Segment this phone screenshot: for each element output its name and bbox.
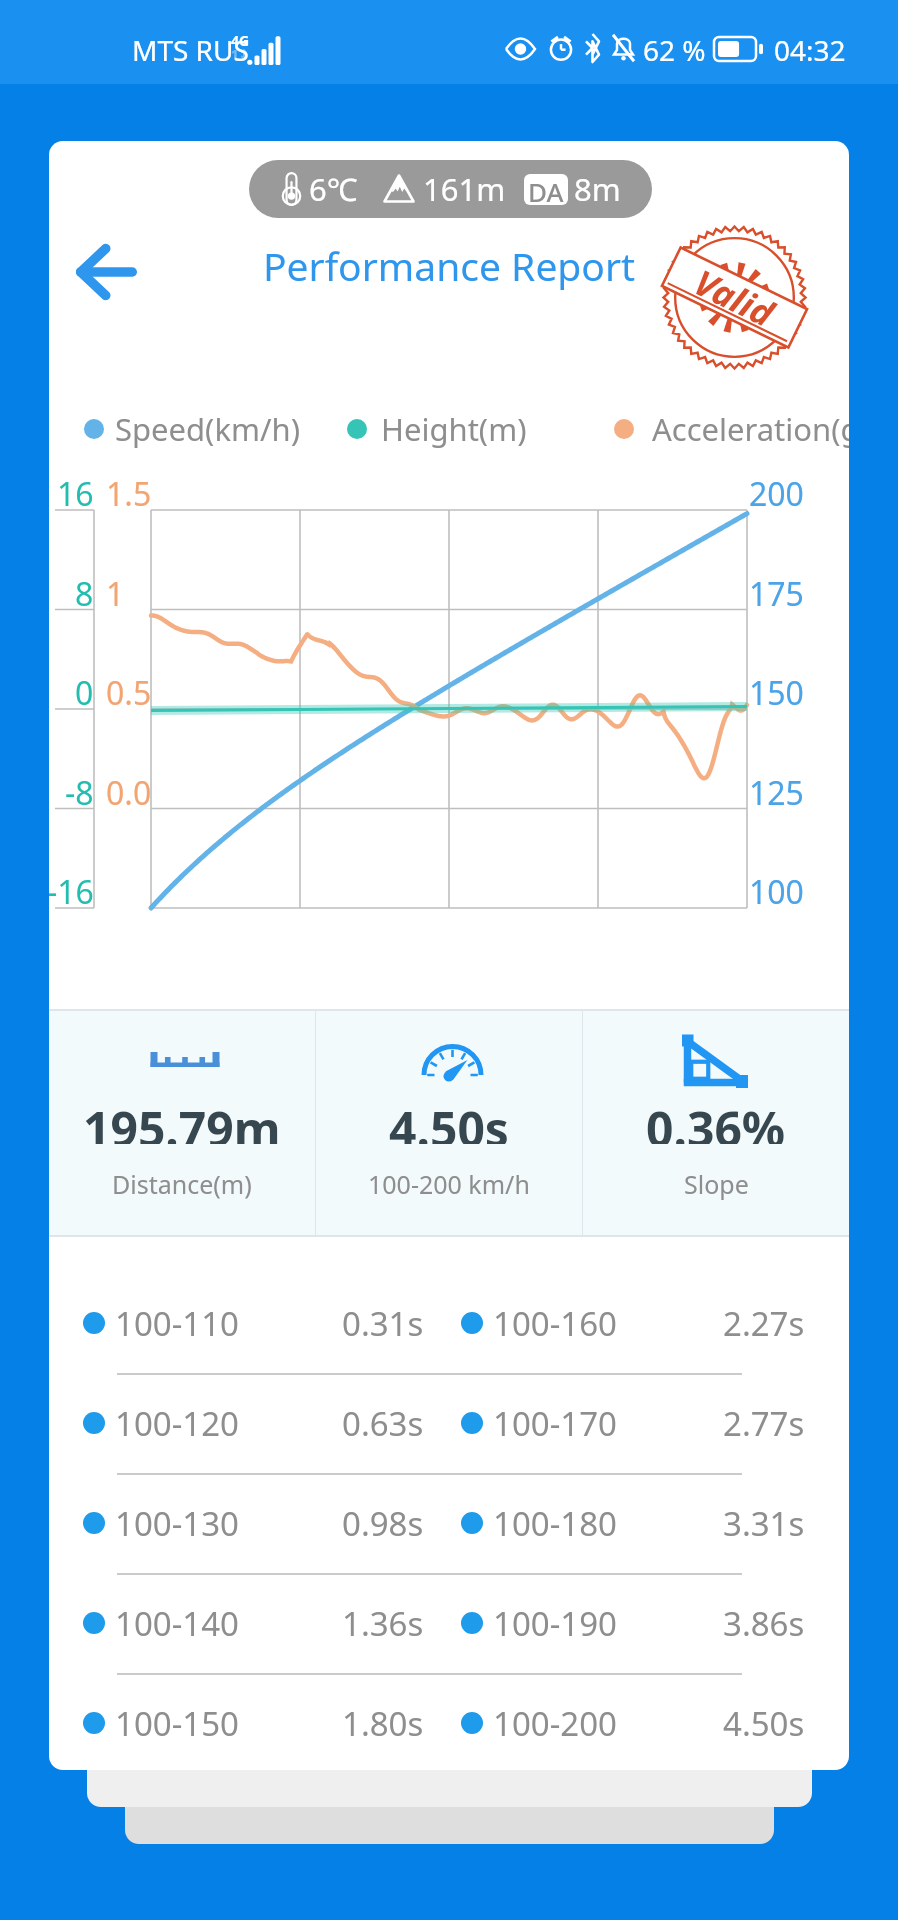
button[interactable]: 100-110 [49, 1292, 849, 1354]
button[interactable]: 100-120 [49, 1392, 849, 1454]
staticText: 100-200 [493, 1701, 617, 1746]
staticText: 6℃ [309, 168, 358, 210]
staticText: 0.63s [342, 1401, 424, 1446]
staticText: 100-130 [115, 1501, 239, 1546]
staticText: 0.36% [646, 1096, 786, 1144]
staticText: 16 [57, 472, 94, 516]
staticText: Speed(km/h) [115, 408, 300, 450]
staticText: DA [528, 174, 564, 205]
staticText: 8m [574, 168, 621, 210]
staticText: 8 [75, 572, 94, 616]
staticText: 04:32 [774, 31, 846, 69]
button[interactable]: 195.79m [49, 1010, 315, 1236]
button[interactable]: 100-130 [49, 1492, 849, 1554]
staticText: 100-140 [115, 1601, 239, 1646]
staticText: 175 [749, 572, 804, 616]
staticText: -8 [65, 771, 94, 815]
staticText: Acceleration(g) [652, 408, 849, 450]
staticText: 100-110 [115, 1301, 239, 1346]
staticText: 2.77s [723, 1401, 805, 1446]
staticText: 100-200 km/h [368, 1167, 530, 1201]
staticText: 3.86s [723, 1601, 805, 1646]
staticText: 150 [749, 671, 804, 715]
staticText: Slope [684, 1167, 749, 1201]
staticText: 100-180 [493, 1501, 617, 1546]
staticText: 100-170 [493, 1401, 617, 1446]
staticText: 1 [106, 572, 125, 616]
staticText: 100-160 [493, 1301, 617, 1346]
staticText: 62 % [643, 31, 706, 69]
staticText: 2.27s [723, 1301, 805, 1346]
staticText: 0.98s [342, 1501, 424, 1546]
staticText: 200 [749, 472, 804, 516]
staticText: 1.5 [106, 472, 152, 516]
button[interactable]: 100-150 [49, 1692, 849, 1754]
staticText: 3.31s [723, 1501, 805, 1546]
staticText: 1.36s [342, 1601, 424, 1646]
staticText: 0 [75, 671, 94, 715]
staticText: 1.80s [342, 1701, 424, 1746]
staticText: MTS RUS [132, 31, 249, 69]
staticText: 4.50s [723, 1701, 805, 1746]
staticText: Height(m) [381, 408, 527, 450]
staticText: Valid [686, 258, 782, 338]
staticText: 0.0 [106, 771, 152, 815]
staticText: 161m [423, 168, 506, 210]
button[interactable]: 4.50s [316, 1010, 582, 1236]
staticText: 0.5 [106, 671, 152, 715]
staticText: 125 [749, 771, 804, 815]
staticText: -16 [49, 870, 94, 914]
staticText: 195.79m [83, 1096, 281, 1144]
button[interactable]: 0.36% [583, 1010, 849, 1236]
staticText: 100-120 [115, 1401, 239, 1446]
staticText: 1↕ [231, 45, 250, 63]
staticText: 100-150 [115, 1701, 239, 1746]
button[interactable]: 100-140 [49, 1592, 849, 1654]
staticText: Performance Report [263, 239, 636, 292]
button[interactable]: Back [58, 229, 155, 315]
staticText: Distance(m) [112, 1167, 252, 1201]
staticText: 4.50s [389, 1096, 509, 1144]
staticText: 100-190 [493, 1601, 617, 1646]
staticText: 4G [231, 31, 250, 50]
staticText: 100 [749, 870, 804, 914]
staticText: 0.31s [342, 1301, 424, 1346]
